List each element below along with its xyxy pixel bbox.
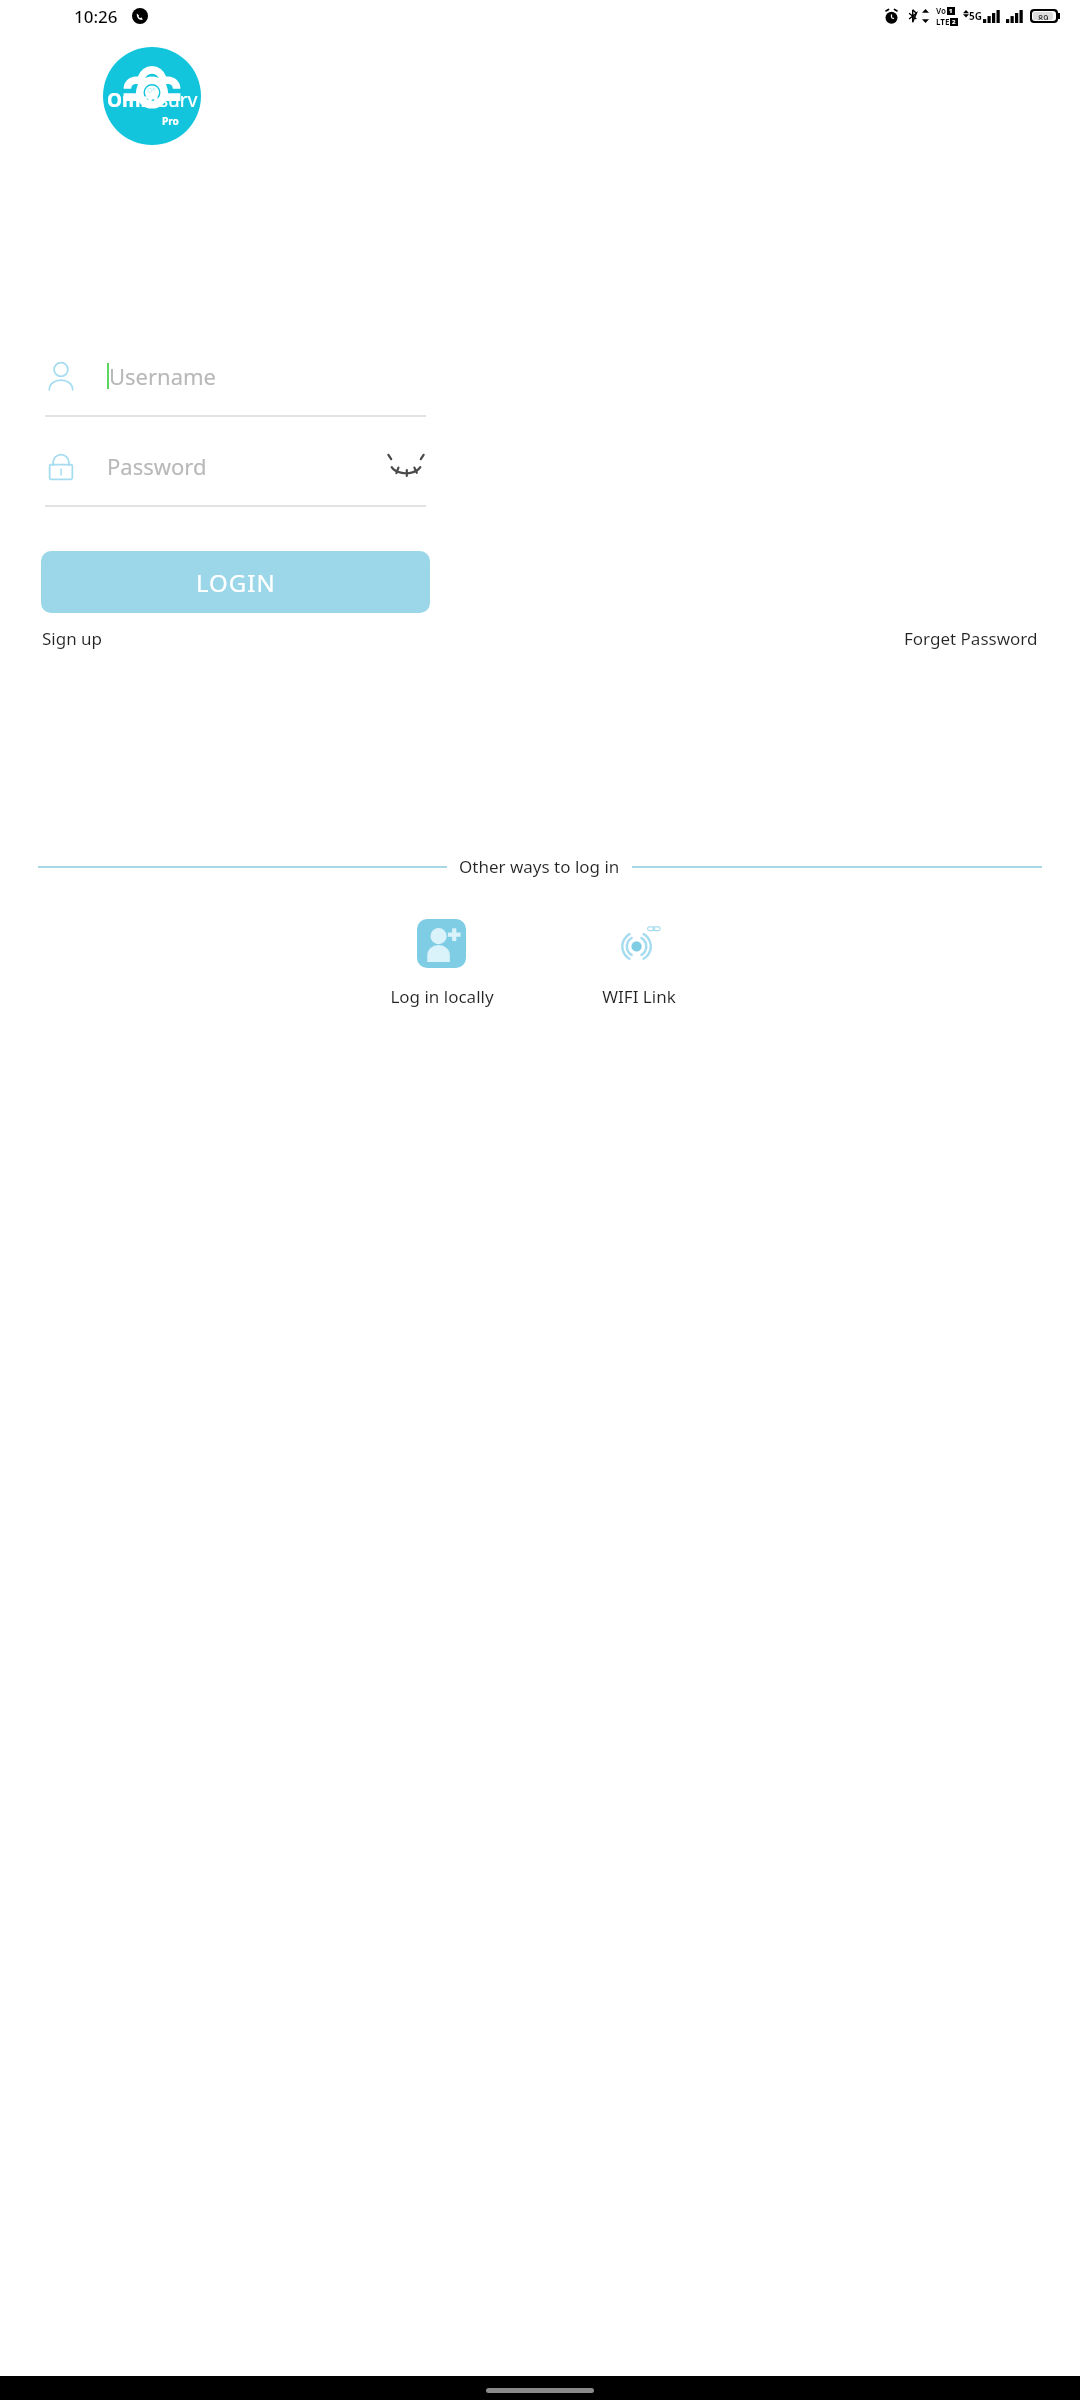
staticText: 5G <box>969 9 982 23</box>
staticText: LTE <box>936 16 950 27</box>
other: Log in locally <box>417 919 466 968</box>
staticText: Log in locally <box>390 985 494 1008</box>
staticText: 2 <box>952 18 956 26</box>
other: WIFI Link <box>614 919 663 968</box>
button[interactable]: Sign up <box>38 623 107 654</box>
staticText: Username <box>109 361 217 391</box>
staticText: Pro <box>162 114 179 128</box>
staticText: surv <box>159 87 198 113</box>
button[interactable]: Password <box>45 435 426 507</box>
staticText: 10:26 <box>74 5 118 28</box>
staticText: 89 <box>1038 12 1049 20</box>
button[interactable]: Forget Password <box>900 623 1042 654</box>
staticText: Vo <box>936 5 947 16</box>
staticText: 1 <box>949 7 953 15</box>
button[interactable]: Log in locally <box>343 915 540 1012</box>
button[interactable]: Show password <box>386 446 426 486</box>
staticText: WIFI Link <box>602 985 676 1008</box>
staticText: Other ways to log in <box>459 855 620 878</box>
button[interactable]: WIFI Link <box>540 915 737 1012</box>
staticText: LOGIN <box>196 566 276 599</box>
button[interactable]: Username <box>45 345 426 417</box>
button[interactable]: LOGIN <box>41 551 430 613</box>
staticText: Omni <box>107 87 159 113</box>
staticText: Password <box>107 451 207 481</box>
